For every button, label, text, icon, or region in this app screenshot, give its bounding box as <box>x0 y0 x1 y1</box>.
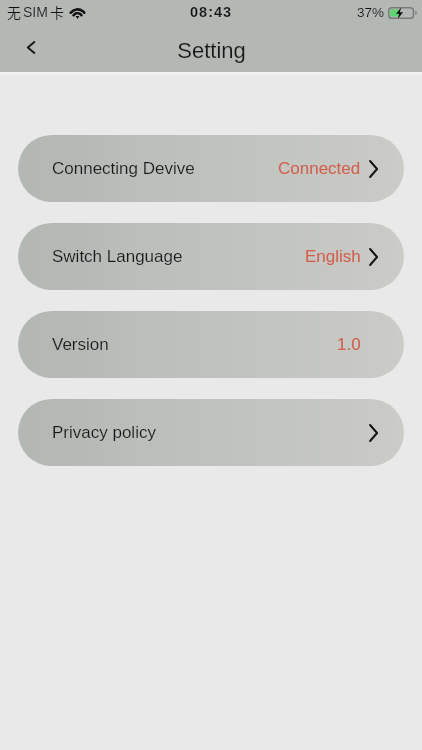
button[interactable]: Version <box>18 311 404 378</box>
staticText: SIM <box>23 4 48 20</box>
button[interactable]: Back <box>0 28 44 72</box>
button[interactable]: Privacy policy <box>18 399 404 466</box>
staticText: 08:43 <box>190 4 233 20</box>
staticText: Privacy policy <box>52 423 156 442</box>
staticText: 1.0 <box>337 335 361 354</box>
staticText: Setting <box>177 38 246 63</box>
button[interactable]: Connecting Devive <box>18 135 404 202</box>
staticText: 无 <box>7 2 21 22</box>
staticText: 卡 <box>50 2 64 22</box>
staticText: Connected <box>278 159 361 178</box>
staticText: Switch Language <box>52 247 183 266</box>
staticText: Version <box>52 335 109 354</box>
staticText: English <box>305 247 361 266</box>
button[interactable]: Switch Language <box>18 223 404 290</box>
staticText: 37% <box>357 5 385 20</box>
staticText: Connecting Devive <box>52 159 195 178</box>
